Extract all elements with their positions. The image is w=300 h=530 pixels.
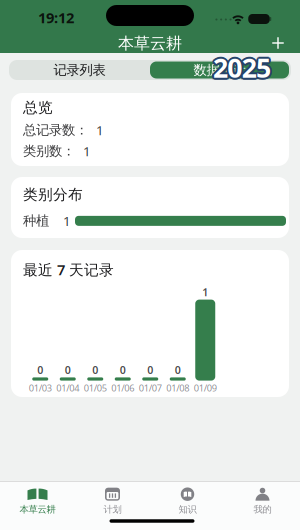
- staticText: 01/04: [56, 382, 79, 394]
- staticText: 记录列表: [53, 62, 105, 78]
- button[interactable]: 记录列表: [10, 60, 149, 80]
- staticText: 0: [147, 363, 153, 377]
- staticText: 知识: [178, 504, 196, 515]
- staticText: 2025: [211, 48, 270, 84]
- staticText: 本草云耕: [118, 34, 182, 53]
- staticText: 0: [120, 363, 126, 377]
- staticText: 0: [175, 363, 181, 377]
- staticText: 0: [37, 363, 43, 377]
- staticText: 01/09: [194, 382, 217, 394]
- staticText: 2025: [211, 51, 270, 87]
- staticText: 01/05: [84, 382, 107, 394]
- staticText: 本草云耕: [19, 504, 55, 515]
- staticText: 2025: [211, 50, 269, 85]
- staticText: 数据统计: [193, 62, 245, 78]
- button[interactable]: 我的: [225, 482, 300, 530]
- staticText: 2025: [214, 48, 272, 84]
- button[interactable]: 知识: [150, 482, 225, 530]
- staticText: 计划: [103, 504, 121, 515]
- button[interactable]: 数据统计: [150, 60, 289, 80]
- staticText: 19:12: [38, 8, 74, 27]
- staticText: 1: [202, 285, 208, 299]
- staticText: 总览: [23, 98, 53, 116]
- staticText: 我的: [253, 504, 271, 515]
- staticText: 最近 7 天记录: [23, 260, 114, 279]
- button[interactable]: 计划: [75, 482, 150, 530]
- staticText: 类别数：: [23, 143, 75, 159]
- staticText: 2025: [215, 50, 273, 85]
- staticText: 种植: [23, 213, 49, 229]
- staticText: 总记录数：: [23, 122, 88, 138]
- staticText: 2025: [214, 51, 272, 87]
- staticText: 01/03: [29, 382, 52, 394]
- button[interactable]: 添加: [265, 30, 291, 56]
- staticText: 2025: [213, 50, 271, 85]
- staticText: 01/08: [166, 382, 189, 394]
- staticText: 类别分布: [23, 185, 83, 203]
- staticText: 1: [63, 212, 71, 230]
- staticText: 0: [65, 363, 71, 377]
- button[interactable]: 本草云耕: [0, 482, 75, 530]
- staticText: 01/06: [111, 382, 134, 394]
- staticText: 2025: [213, 52, 271, 87]
- staticText: 1: [96, 121, 104, 139]
- staticText: 01/07: [139, 382, 162, 394]
- staticText: 2025: [213, 48, 271, 83]
- staticText: 1: [83, 142, 91, 160]
- staticText: 0: [92, 363, 98, 377]
